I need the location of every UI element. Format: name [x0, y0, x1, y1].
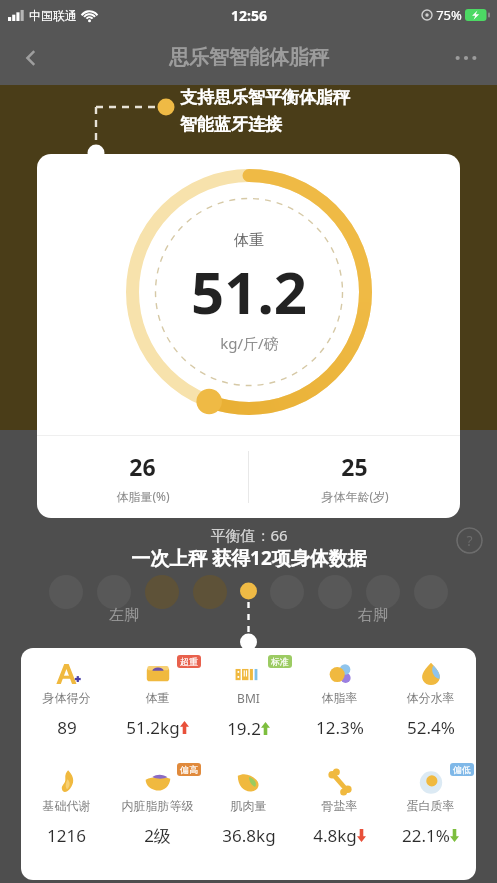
staticText: 一次上秤 获得12项身体数据 — [131, 545, 367, 571]
button[interactable]: 基础代谢 — [21, 766, 112, 874]
button[interactable]: 身体得分 — [21, 658, 112, 766]
staticText: 左脚 — [109, 606, 139, 625]
staticText: 22.1% — [402, 824, 450, 847]
staticText: 4.8kg — [313, 824, 357, 847]
staticText: 体脂率 — [294, 690, 385, 705]
staticText: 支持思乐智平衡体脂秤 — [180, 87, 350, 108]
staticText: 偏低 — [453, 764, 471, 775]
staticText: 肌肉量 — [203, 798, 294, 813]
staticText: 体分水率 — [385, 690, 476, 705]
button[interactable]: 返回 — [12, 39, 50, 77]
staticText: 51.2 — [191, 252, 307, 331]
staticText: 19.2 — [227, 717, 261, 740]
staticText: 89 — [57, 716, 77, 739]
staticText: 中国联通 — [29, 8, 77, 23]
staticText: 2级 — [144, 824, 171, 847]
staticText: 75% — [436, 6, 462, 24]
button[interactable]: 帮助 — [456, 527, 483, 554]
staticText: 1216 — [47, 824, 86, 847]
button[interactable]: 26 — [37, 436, 248, 518]
button[interactable]: 体分水率 — [385, 658, 476, 766]
staticText: 骨盐率 — [294, 798, 385, 813]
staticText: 51.2kg — [126, 716, 180, 739]
staticText: 体重 — [112, 690, 203, 705]
button[interactable]: 更多 — [447, 39, 485, 77]
staticText: 思乐智智能体脂秤 — [169, 45, 329, 70]
button[interactable]: 偏高 — [112, 766, 203, 874]
staticText: 26 — [129, 451, 156, 482]
staticText: 右脚 — [358, 606, 388, 625]
button[interactable]: 25 — [249, 436, 460, 518]
staticText: 体重 — [234, 231, 264, 250]
button[interactable]: 体脂率 — [294, 658, 385, 766]
button[interactable]: 偏低 — [385, 766, 476, 874]
staticText: 基础代谢 — [21, 798, 112, 813]
button[interactable]: 肌肉量 — [203, 766, 294, 874]
button[interactable]: 骨盐率 — [294, 766, 385, 874]
staticText: 身体年龄(岁) — [321, 488, 389, 504]
staticText: 超重 — [180, 656, 198, 667]
staticText: 52.4% — [407, 716, 455, 739]
staticText: kg/斤/磅 — [220, 333, 279, 353]
staticText: 内脏脂肪等级 — [112, 798, 203, 813]
staticText: BMI — [203, 690, 294, 706]
staticText: 偏高 — [180, 764, 198, 775]
staticText: 12:56 — [231, 6, 267, 25]
staticText: 体脂量(%) — [116, 488, 170, 504]
button[interactable]: 体重 — [37, 154, 460, 518]
staticText: 标准 — [271, 656, 289, 667]
staticText: 平衡值：66 — [210, 525, 288, 545]
staticText: 身体得分 — [21, 690, 112, 705]
button[interactable]: 超重 — [112, 658, 203, 766]
staticText: 25 — [341, 451, 368, 482]
staticText: 蛋白质率 — [385, 798, 476, 813]
staticText: 智能蓝牙连接 — [180, 114, 282, 135]
staticText: 36.8kg — [222, 824, 276, 847]
button[interactable]: 身体得分 — [21, 648, 476, 880]
button[interactable]: 标准 — [203, 658, 294, 766]
staticText: ? — [466, 531, 473, 550]
staticText: 12.3% — [316, 716, 364, 739]
